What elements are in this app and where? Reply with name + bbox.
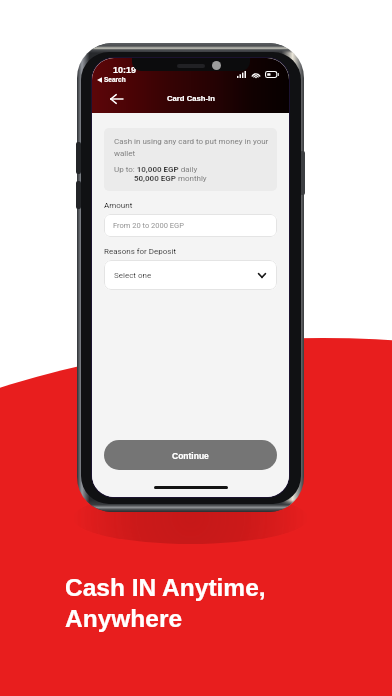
staticText: Search	[104, 76, 126, 83]
staticText: Up to: 10,000 EGP daily	[114, 165, 198, 174]
staticText: Reasons for Deposit	[104, 247, 177, 256]
staticText: Continue	[172, 451, 209, 460]
staticText: 10:19	[113, 65, 137, 75]
staticText: Cash in using any card to put money in y…	[114, 137, 269, 158]
staticText: Card Cash-In	[167, 94, 215, 103]
staticText: 50,000 EGP monthly	[114, 174, 207, 183]
staticText: Select one	[114, 271, 152, 280]
staticText: Cash IN Anytime, Anywhere	[65, 574, 266, 632]
button[interactable]: Continue	[104, 440, 277, 470]
button[interactable]: Back	[105, 90, 127, 108]
button[interactable]: From 20 to 2000 EGP	[104, 214, 277, 237]
staticText: From 20 to 2000 EGP	[113, 221, 184, 230]
button[interactable]: Select one	[104, 260, 277, 290]
staticText: Amount	[104, 201, 133, 210]
